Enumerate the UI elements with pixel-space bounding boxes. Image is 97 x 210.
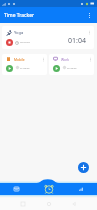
button[interactable]: Yoga bbox=[2, 26, 94, 49]
staticText: Mobile bbox=[14, 57, 25, 61]
button[interactable]: More for Mobile bbox=[40, 56, 46, 62]
button[interactable]: Start Mobile bbox=[6, 65, 13, 72]
staticText: Yoga bbox=[14, 30, 24, 36]
button[interactable]: Mobile bbox=[2, 54, 47, 75]
button[interactable]: Add task bbox=[78, 162, 89, 173]
button[interactable]: Stop Yoga bbox=[6, 39, 13, 46]
button[interactable]: Timer bbox=[33, 183, 65, 195]
button[interactable]: Tasks bbox=[0, 183, 33, 195]
button[interactable]: More options bbox=[83, 9, 96, 22]
staticText: 07:48:00 bbox=[67, 66, 77, 69]
staticText: Time Tracker bbox=[4, 12, 35, 19]
button[interactable]: Work bbox=[49, 54, 94, 75]
staticText: 00:23:55 bbox=[20, 40, 30, 43]
staticText: 01:08:00 bbox=[20, 66, 30, 69]
staticText: Work bbox=[61, 57, 70, 61]
staticText: 01:04 bbox=[68, 36, 86, 46]
button[interactable]: Statistics bbox=[65, 183, 97, 195]
button[interactable]: More for Yoga bbox=[86, 29, 93, 36]
button[interactable]: Start Work bbox=[53, 65, 60, 72]
button[interactable]: More for Work bbox=[87, 56, 93, 62]
